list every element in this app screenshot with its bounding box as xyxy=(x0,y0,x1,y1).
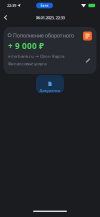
staticText: + 9 000 ₽ xyxy=(8,40,44,51)
staticText: Финансовые услуги xyxy=(8,61,47,66)
staticText: Банк xyxy=(40,4,48,7)
button[interactable]: Edit xyxy=(84,55,92,64)
staticText: 22:39 xyxy=(7,3,16,8)
button[interactable]: Документы xyxy=(36,75,64,93)
staticText: Пополнение оборотного xyxy=(13,31,74,39)
staticText: Документы xyxy=(39,88,60,93)
staticText: 08.01.2023, 22:33 xyxy=(35,15,64,20)
button[interactable]: Back xyxy=(1,12,10,23)
staticText: interbank.ru → Ozon Карта xyxy=(8,53,64,59)
